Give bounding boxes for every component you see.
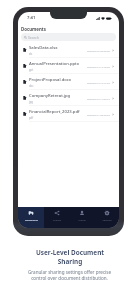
staticText: pdf bbox=[29, 116, 34, 120]
staticText: jpg bbox=[29, 100, 33, 104]
button[interactable]: AnnualPresentation.pptx bbox=[18, 58, 119, 74]
staticText: SalesData.xlsx bbox=[29, 45, 58, 51]
staticText: 2023/07/11 09:32:44 bbox=[87, 113, 110, 116]
button[interactable]: ProjectProposal.docx bbox=[18, 74, 119, 90]
staticText: AnnualPresentation.pptx bbox=[29, 61, 79, 67]
staticText: User-Level Document Sharing bbox=[35, 248, 105, 266]
staticText: Documents bbox=[21, 26, 46, 32]
button[interactable]: Search bbox=[21, 33, 116, 41]
other: Open FinancialReport_2023.pdf bbox=[112, 113, 114, 116]
button[interactable]: CompanyRetreat.jpg bbox=[18, 90, 119, 106]
staticText: Documents bbox=[25, 218, 38, 221]
other: Open CompanyRetreat.jpg bbox=[112, 97, 114, 100]
staticText: Granular sharing settings offer precise … bbox=[20, 269, 119, 281]
button[interactable]: SalesData.xlsx bbox=[18, 42, 119, 58]
staticText: Shared bbox=[53, 218, 61, 221]
button[interactable]: Shared bbox=[44, 207, 69, 228]
staticText: doc bbox=[29, 84, 34, 88]
staticText: 7:41 bbox=[27, 15, 36, 21]
staticText: xls bbox=[29, 52, 33, 56]
staticText: 2023/07/12 11:04:16 bbox=[87, 97, 110, 100]
staticText: 2023/07/14 17:12:40 bbox=[87, 65, 110, 68]
staticText: FinancialReport_2023.pdf bbox=[29, 109, 80, 115]
staticText: Profile bbox=[78, 218, 86, 221]
other: Open ProjectProposal.docx bbox=[112, 81, 114, 84]
button[interactable]: FinancialReport_2023.pdf bbox=[18, 106, 119, 122]
staticText: Search bbox=[28, 35, 39, 40]
staticText: 2023/07/15 08:32:40 bbox=[87, 49, 110, 52]
other: Open AnnualPresentation.pptx bbox=[112, 65, 114, 68]
staticText: CompanyRetreat.jpg bbox=[29, 93, 71, 99]
button[interactable]: Profile bbox=[69, 207, 94, 228]
staticText: 2023/07/13 14:11:52 bbox=[87, 81, 110, 84]
staticText: ppt bbox=[29, 68, 34, 72]
button[interactable]: Settings bbox=[94, 207, 119, 228]
staticText: Settings bbox=[102, 218, 112, 221]
other: Open SalesData.xlsx bbox=[112, 49, 114, 52]
staticText: ProjectProposal.docx bbox=[29, 77, 72, 83]
button[interactable]: Documents bbox=[18, 207, 44, 228]
